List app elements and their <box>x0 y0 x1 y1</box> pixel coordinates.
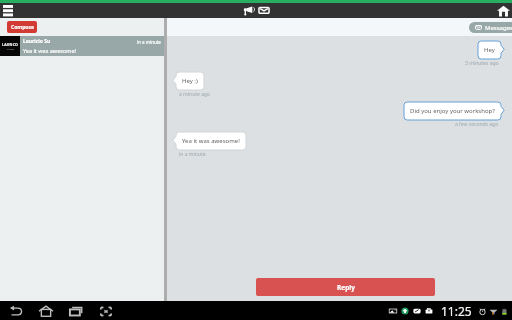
staticText: Messages <box>485 24 512 32</box>
staticText: in a minute <box>137 39 161 45</box>
button[interactable]: Yea it was awesome! <box>176 132 246 150</box>
staticText: Yea it was awesome! <box>23 47 76 54</box>
staticText: Reply <box>337 283 355 292</box>
button[interactable]: Menu <box>3 5 13 16</box>
button[interactable]: Hey <box>478 41 501 59</box>
staticText: Hey <box>484 46 495 54</box>
button[interactable]: Messages <box>258 5 270 16</box>
staticText: studio <box>7 47 15 50</box>
button[interactable]: Compose <box>7 21 37 33</box>
button[interactable]: Did you enjoy your workshop? <box>404 102 501 120</box>
staticText: LAUNCO <box>2 42 19 47</box>
button[interactable]: Recent apps <box>68 303 84 319</box>
staticText: Compose <box>11 24 34 31</box>
staticText: in a minute <box>179 151 206 158</box>
button[interactable]: LAUNCO <box>0 36 164 56</box>
button[interactable]: Reply <box>256 278 435 296</box>
button[interactable]: Back <box>8 303 24 319</box>
staticText: Yea it was awesome! <box>182 137 240 145</box>
button[interactable]: Messages <box>475 22 512 33</box>
button[interactable]: Screenshot <box>98 303 114 319</box>
button[interactable]: Home <box>497 5 510 17</box>
staticText: Did you enjoy your workshop? <box>410 107 495 115</box>
staticText: a few seconds ago <box>455 121 499 128</box>
button[interactable]: Hey :) <box>176 72 204 90</box>
button[interactable]: Home <box>38 303 54 319</box>
staticText: Hey :) <box>182 77 198 85</box>
staticText: Lauricio Su <box>23 38 51 45</box>
staticText: 3 minutes ago <box>465 60 499 67</box>
staticText: a minute ago <box>179 91 211 98</box>
button[interactable]: Announcements <box>242 5 254 16</box>
staticText: 11:25 <box>441 303 472 319</box>
